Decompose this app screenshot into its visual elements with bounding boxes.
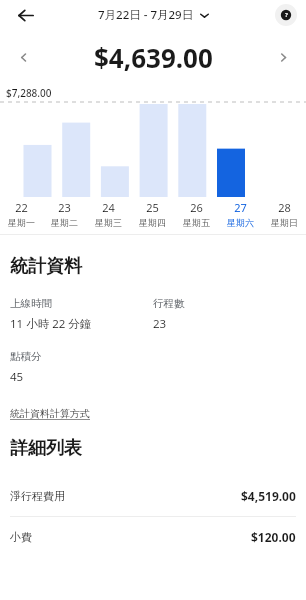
- button[interactable]: Next week: [270, 44, 296, 70]
- staticText: 上線時間: [10, 297, 52, 310]
- staticText: 詳細列表: [10, 437, 82, 460]
- staticText: 小費: [10, 530, 32, 544]
- staticText: 星期五: [183, 217, 210, 228]
- staticText: 淨行程費用: [10, 489, 65, 503]
- staticText: 星期日: [271, 217, 298, 228]
- staticText: 統計資料: [10, 255, 82, 278]
- staticText: 星期四: [139, 217, 166, 228]
- staticText: $4,639.00: [94, 40, 213, 75]
- staticText: 22: [15, 200, 28, 215]
- button[interactable]: 小費: [10, 517, 296, 557]
- button[interactable]: 27: [218, 200, 262, 228]
- button[interactable]: 25: [130, 200, 174, 228]
- button[interactable]: 7月22日 - 7月29日: [98, 7, 209, 23]
- button[interactable]: 28: [262, 200, 306, 228]
- staticText: $7,288.00: [6, 86, 52, 100]
- staticText: 星期六: [227, 217, 254, 228]
- button[interactable]: 淨行程費用: [10, 476, 296, 516]
- staticText: 點積分: [10, 350, 42, 363]
- staticText: $4,519.00: [241, 488, 296, 504]
- staticText: 星期三: [95, 217, 122, 228]
- staticText: 45: [10, 369, 24, 385]
- button[interactable]: Help: [274, 3, 298, 27]
- staticText: 23: [153, 316, 167, 332]
- button[interactable]: 統計資料計算方式: [10, 407, 90, 420]
- staticText: 28: [278, 200, 291, 215]
- button[interactable]: 26: [174, 200, 218, 228]
- staticText: 7月22日 - 7月29日: [98, 7, 194, 23]
- staticText: 11 小時 22 分鐘: [10, 316, 92, 332]
- button[interactable]: Previous week: [10, 44, 36, 70]
- staticText: 行程數: [153, 297, 185, 310]
- staticText: 統計資料計算方式: [10, 407, 90, 420]
- staticText: 24: [102, 200, 115, 215]
- staticText: 23: [58, 200, 71, 215]
- button[interactable]: Back: [8, 0, 42, 30]
- staticText: 25: [146, 200, 159, 215]
- staticText: 星期二: [51, 217, 78, 228]
- button[interactable]: 23: [43, 200, 86, 228]
- staticText: 星期一: [8, 217, 35, 228]
- staticText: 27: [234, 200, 247, 215]
- button[interactable]: 22: [0, 200, 43, 228]
- button[interactable]: 24: [86, 200, 130, 228]
- staticText: 26: [190, 200, 203, 215]
- staticText: $120.00: [251, 529, 296, 545]
- staticText: ?: [285, 11, 288, 19]
